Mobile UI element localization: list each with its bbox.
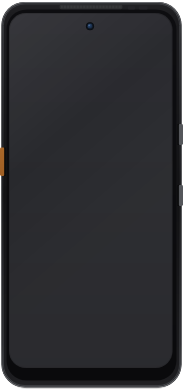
button[interactable]: Smartphone, screen off, front view (0, 0, 183, 390)
